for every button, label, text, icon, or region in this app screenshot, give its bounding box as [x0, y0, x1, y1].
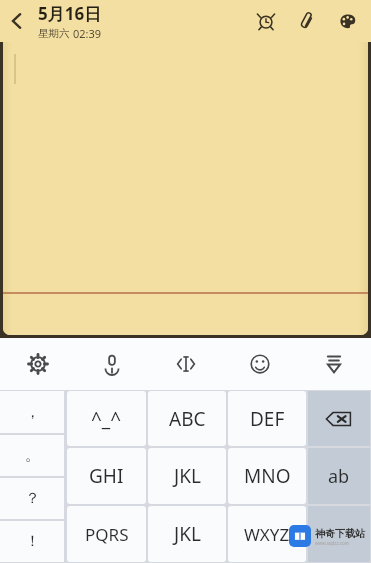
staticText: MNO	[244, 463, 291, 489]
button[interactable]: JKL	[148, 506, 226, 562]
button[interactable]	[308, 506, 370, 562]
staticText: DEF	[250, 406, 285, 432]
button[interactable]: ，	[0, 391, 64, 433]
staticText: ab	[328, 464, 350, 489]
button[interactable]: PQRS	[67, 506, 146, 562]
button[interactable]: Backspace	[308, 391, 370, 446]
staticText: 5月16日	[38, 2, 102, 25]
button[interactable]: 。	[0, 435, 64, 476]
button[interactable]: ！	[0, 521, 64, 562]
staticText: 。	[25, 446, 40, 465]
button[interactable]: Attach	[294, 8, 320, 34]
staticText: 02:39	[73, 26, 102, 41]
button[interactable]: Keyboard settings	[0, 338, 75, 390]
staticText: ？	[25, 489, 40, 508]
staticText: ABC	[169, 406, 206, 432]
staticText: ，	[25, 403, 40, 422]
button[interactable]: MNO	[228, 448, 306, 504]
staticText: 神奇下载站	[315, 527, 365, 540]
button[interactable]: Hide keyboard	[297, 338, 371, 390]
button[interactable]: ^_^	[67, 391, 146, 446]
button[interactable]: GHI	[67, 448, 146, 504]
button[interactable]: ABC	[148, 391, 226, 446]
staticText: JKL	[174, 463, 201, 489]
staticText: 星期六	[38, 27, 70, 40]
staticText: JKL	[174, 521, 201, 547]
button[interactable]: WXYZ	[228, 506, 306, 562]
staticText: WXYZ	[244, 523, 290, 546]
button[interactable]: Color palette	[335, 8, 361, 34]
button[interactable]: Alarm	[253, 8, 279, 34]
button[interactable]: ？	[0, 478, 64, 519]
button[interactable]: Move cursor	[149, 338, 223, 390]
staticText: ^_^	[91, 406, 122, 432]
button[interactable]	[3, 42, 368, 335]
button[interactable]: JKL	[148, 448, 226, 504]
button[interactable]: Back	[0, 0, 34, 42]
button[interactable]: DEF	[228, 391, 306, 446]
staticText: PQRS	[85, 523, 129, 546]
staticText: GHI	[89, 463, 124, 489]
button[interactable]: ab	[308, 448, 370, 504]
staticText: ！	[25, 532, 40, 551]
staticText: www.sqdzz.com	[315, 540, 349, 546]
button[interactable]: Voice input	[75, 338, 149, 390]
button[interactable]: Emoji	[223, 338, 297, 390]
